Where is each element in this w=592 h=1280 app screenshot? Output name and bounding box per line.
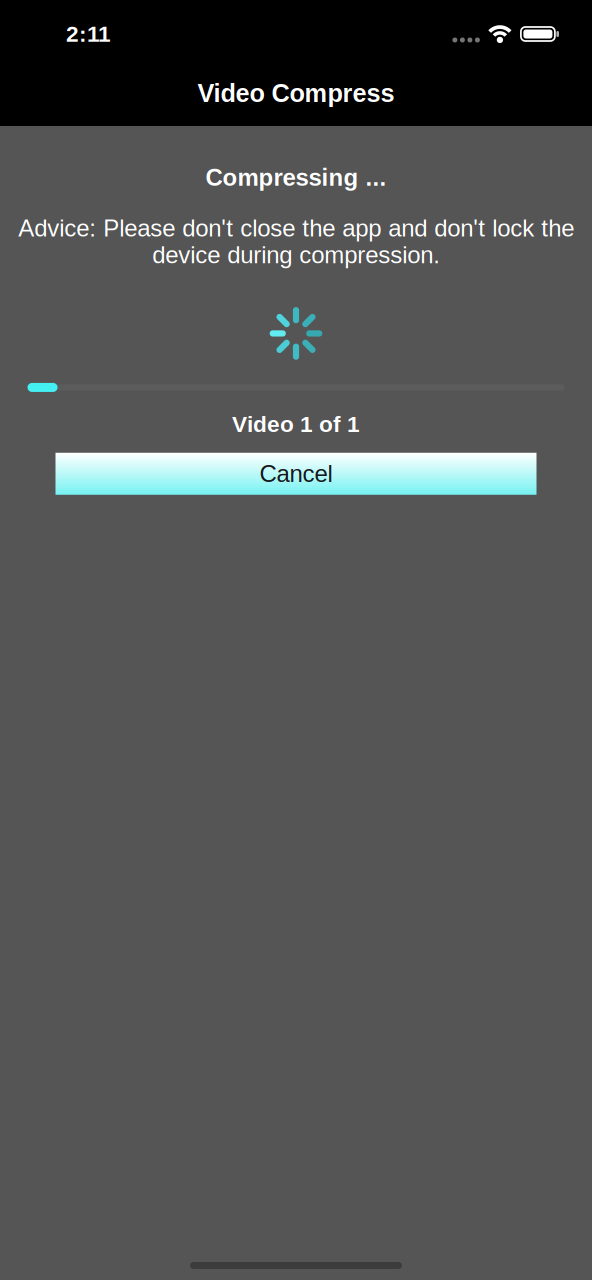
button[interactable]: Cancel xyxy=(55,453,536,495)
staticText: Compressing ... xyxy=(205,164,386,191)
staticText: 2:11 xyxy=(66,21,111,47)
staticText: Cancel xyxy=(259,460,332,487)
staticText: Video Compress xyxy=(197,79,394,107)
staticText: Video 1 of 1 xyxy=(232,411,360,437)
staticText: Advice: Please don't close the app and d… xyxy=(18,215,574,268)
